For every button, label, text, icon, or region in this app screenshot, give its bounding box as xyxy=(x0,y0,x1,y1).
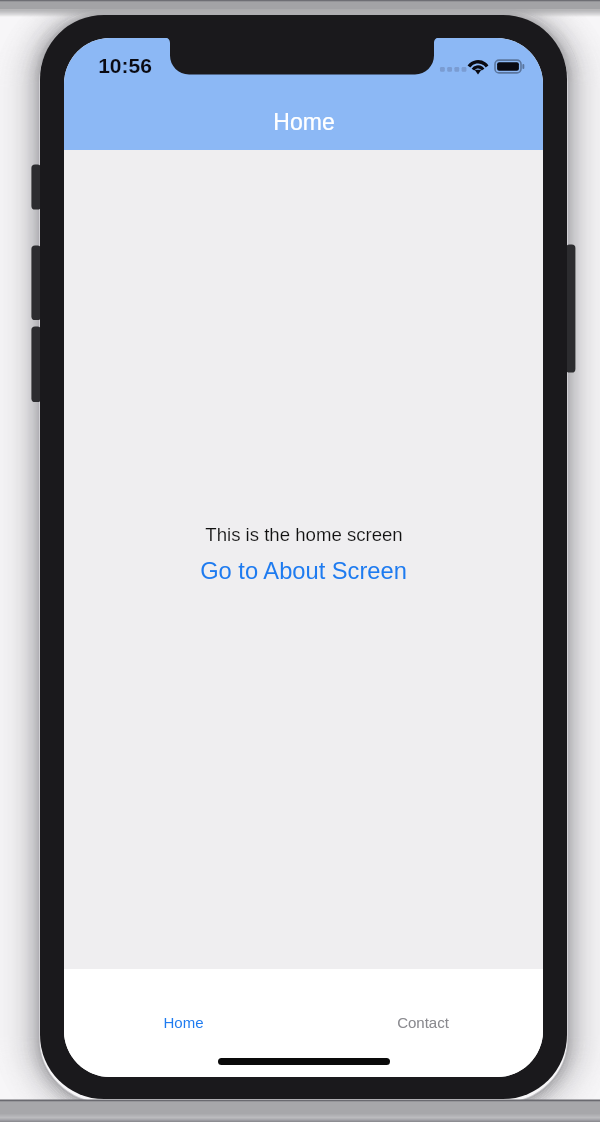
staticText: This is the home screen xyxy=(205,524,403,545)
staticText: Go to About Screen xyxy=(200,558,407,584)
staticText: 10:56 xyxy=(98,54,152,77)
staticText: Home xyxy=(273,109,335,135)
button[interactable]: Contact xyxy=(303,1005,543,1039)
button[interactable]: Go to About Screen xyxy=(200,558,407,584)
staticText: Contact xyxy=(397,1014,449,1031)
button[interactable]: Home xyxy=(64,1005,303,1039)
staticText: Home xyxy=(163,1014,204,1031)
